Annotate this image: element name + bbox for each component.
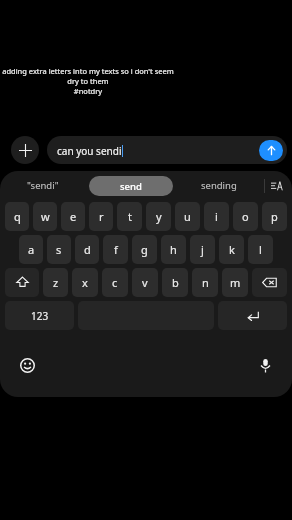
staticText: s [56, 242, 62, 257]
button[interactable]: q [5, 202, 29, 231]
button[interactable]: p [262, 202, 287, 231]
staticText: g [141, 242, 148, 257]
staticText: send [120, 180, 142, 193]
button[interactable]: j [190, 235, 215, 264]
button[interactable]: Send [259, 140, 283, 161]
staticText: h [170, 242, 177, 257]
button[interactable]: x [72, 268, 98, 297]
button[interactable]: s [47, 235, 71, 264]
button[interactable]: a [19, 235, 43, 264]
staticText: b [172, 275, 179, 290]
staticText: 123 [31, 309, 49, 323]
staticText: t [128, 209, 132, 224]
staticText: c [112, 275, 118, 290]
staticText: n [202, 275, 209, 290]
staticText: "sendi" [27, 179, 59, 192]
button[interactable]: n [192, 268, 218, 297]
staticText: can you sendi [57, 144, 122, 158]
button[interactable]: v [132, 268, 158, 297]
staticText: j [201, 242, 204, 257]
staticText: sending [201, 179, 237, 192]
staticText: a [28, 242, 35, 257]
button[interactable]: send [89, 176, 173, 196]
button[interactable]: d [75, 235, 99, 264]
button[interactable]: Enter [218, 301, 287, 330]
button[interactable]: l [248, 235, 273, 264]
button[interactable]: g [132, 235, 157, 264]
button[interactable]: Emoji [16, 354, 38, 376]
button[interactable]: Text options [266, 175, 288, 197]
button[interactable]: "sendi" [0, 171, 86, 200]
staticText: r [99, 209, 104, 224]
staticText: p [271, 209, 278, 224]
staticText: z [53, 275, 59, 290]
staticText: w [41, 209, 50, 224]
button[interactable]: w [33, 202, 57, 231]
button[interactable]: f [103, 235, 128, 264]
button[interactable]: Backspace [252, 268, 287, 297]
staticText: d [84, 242, 91, 257]
button[interactable]: u [175, 202, 200, 231]
button[interactable]: Attach [11, 136, 39, 164]
staticText: k [229, 242, 235, 257]
button[interactable]: z [43, 268, 68, 297]
button[interactable]: m [222, 268, 248, 297]
button[interactable]: k [219, 235, 244, 264]
button[interactable]: Voice input [254, 354, 276, 376]
staticText: i [215, 209, 218, 224]
staticText: q [14, 209, 21, 224]
button[interactable]: b [162, 268, 188, 297]
button[interactable]: t [117, 202, 142, 231]
button[interactable]: o [233, 202, 258, 231]
staticText: y [156, 209, 162, 224]
button[interactable]: r [89, 202, 113, 231]
staticText: e [70, 209, 77, 224]
staticText: o [242, 209, 249, 224]
staticText: f [114, 242, 118, 257]
staticText: l [259, 242, 262, 257]
staticText: m [230, 275, 241, 290]
staticText: adding extra letters into my texts so i … [0, 66, 176, 96]
button[interactable]: y [146, 202, 171, 231]
staticText: u [184, 209, 191, 224]
button[interactable]: e [61, 202, 85, 231]
staticText: v [142, 275, 148, 290]
button[interactable]: 123 [5, 301, 74, 330]
button[interactable]: c [102, 268, 128, 297]
button[interactable]: Shift [5, 268, 39, 297]
button[interactable]: h [161, 235, 186, 264]
button[interactable]: sending [176, 171, 262, 200]
staticText: x [82, 275, 88, 290]
button[interactable]: can you sendi [47, 136, 287, 164]
button[interactable]: i [204, 202, 229, 231]
